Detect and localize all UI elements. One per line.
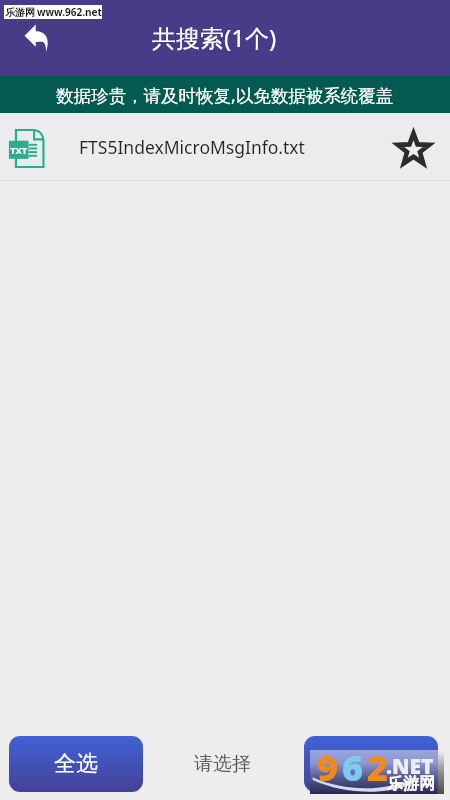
button[interactable]: Favorite bbox=[388, 122, 438, 172]
button[interactable]: 全选 bbox=[9, 736, 143, 792]
staticText: 6 bbox=[342, 743, 364, 787]
staticText: TXT bbox=[10, 144, 28, 157]
staticText: 2 bbox=[367, 743, 389, 787]
staticText: 数据珍贵，请及时恢复,以免数据被系统覆盖 bbox=[56, 83, 394, 107]
button[interactable]: TXT bbox=[0, 113, 450, 180]
staticText: FTS5IndexMicroMsgInfo.txt bbox=[79, 135, 388, 159]
staticText: .NET bbox=[386, 752, 434, 781]
staticText: 乐游网 bbox=[387, 774, 435, 794]
staticText: 9 bbox=[317, 743, 339, 787]
button[interactable]: Back bbox=[10, 11, 64, 65]
staticText: www.962.net bbox=[37, 5, 102, 19]
staticText: 乐游网 bbox=[5, 6, 35, 19]
staticText: 全选 bbox=[54, 750, 98, 778]
button[interactable]: 恢复 bbox=[304, 736, 438, 792]
staticText: 请选择 bbox=[194, 752, 251, 776]
staticText: 恢复 bbox=[349, 750, 393, 778]
staticText: 共搜索(1个) bbox=[152, 21, 277, 54]
